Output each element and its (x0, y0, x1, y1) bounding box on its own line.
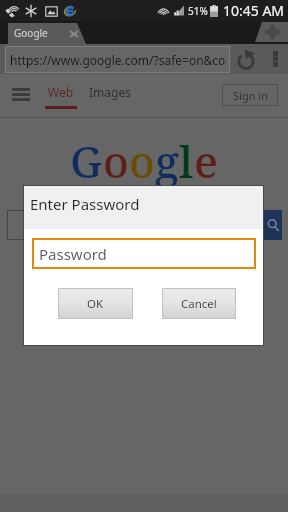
button[interactable]: Google (8, 23, 86, 44)
button[interactable]: Images (89, 84, 131, 100)
button[interactable]: Cancel (162, 288, 236, 319)
staticText: Cancel (181, 296, 217, 312)
staticText: l (179, 131, 194, 191)
staticText: Google (14, 26, 48, 40)
staticText: 51% (188, 4, 208, 18)
button[interactable]: Search (264, 210, 282, 240)
staticText: o (129, 131, 155, 191)
staticText: 10:45 AM (223, 1, 285, 20)
button[interactable]: https://www.google.com/?safe=on&co (5, 46, 230, 73)
button[interactable]: Sign in (222, 84, 278, 106)
button[interactable]: More options (267, 46, 283, 72)
button[interactable]: Web (44, 74, 78, 118)
staticText: e (194, 131, 218, 191)
button[interactable]: Password (32, 238, 256, 269)
button[interactable]: Reload (238, 49, 257, 70)
staticText: Sign in (233, 88, 268, 103)
staticText: https://www.google.com/?safe=on&co (10, 52, 226, 68)
button[interactable]: Navigation menu (12, 88, 30, 101)
button[interactable]: New tab (255, 22, 288, 42)
staticText: Password (39, 244, 107, 264)
staticText: g (155, 131, 179, 191)
staticText: o (103, 131, 129, 191)
other: Close tab (70, 30, 78, 38)
staticText: G (70, 131, 103, 191)
button[interactable]: OK (58, 288, 133, 319)
button[interactable] (7, 210, 264, 240)
staticText: Web (48, 84, 74, 100)
staticText: OK (87, 296, 104, 312)
staticText: Enter Password (30, 194, 140, 214)
